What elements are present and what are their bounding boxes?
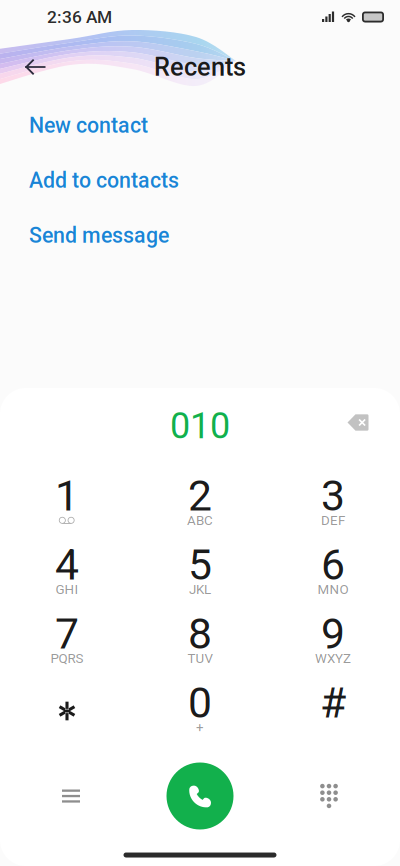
button[interactable]: 7 bbox=[0, 613, 133, 682]
staticText: DEF bbox=[321, 513, 345, 528]
button[interactable]: 2 bbox=[133, 475, 266, 544]
staticText: New contact bbox=[29, 113, 148, 138]
staticText: PQRS bbox=[50, 651, 83, 666]
staticText: Add to contacts bbox=[29, 168, 179, 193]
staticText: 9 bbox=[321, 609, 345, 659]
staticText: 0 bbox=[188, 678, 212, 728]
button[interactable]: Keypad bbox=[300, 767, 358, 825]
button[interactable] bbox=[0, 682, 133, 751]
button[interactable]: 1 bbox=[0, 475, 133, 544]
staticText: Send message bbox=[29, 223, 169, 248]
staticText: WXYZ bbox=[315, 651, 351, 666]
staticText: + bbox=[196, 720, 204, 735]
button[interactable]: # bbox=[266, 682, 399, 751]
staticText: 5 bbox=[188, 540, 212, 590]
staticText: MNO bbox=[317, 582, 348, 597]
staticText: 2 bbox=[188, 471, 212, 521]
button[interactable]: Back bbox=[12, 44, 58, 90]
staticText: ABC bbox=[187, 513, 213, 528]
button[interactable]: 9 bbox=[266, 613, 399, 682]
button[interactable]: 6 bbox=[266, 544, 399, 613]
staticText: JKL bbox=[189, 582, 211, 597]
staticText: # bbox=[320, 678, 346, 728]
button[interactable]: Delete bbox=[333, 404, 383, 448]
staticText: 6 bbox=[321, 540, 345, 590]
staticText: 4 bbox=[55, 540, 79, 590]
button[interactable]: 4 bbox=[0, 544, 133, 613]
staticText: 010 bbox=[170, 405, 230, 447]
button[interactable]: New contact bbox=[0, 98, 400, 153]
button[interactable]: 8 bbox=[133, 613, 266, 682]
button[interactable]: Add to contacts bbox=[0, 153, 400, 208]
staticText: 1 bbox=[55, 471, 79, 521]
staticText: GHI bbox=[55, 582, 78, 597]
staticText: 2:36 AM bbox=[47, 7, 112, 27]
staticText: Recents bbox=[154, 52, 246, 82]
staticText: 7 bbox=[55, 609, 79, 659]
button[interactable]: Send message bbox=[0, 208, 400, 263]
button[interactable]: More options bbox=[42, 767, 100, 825]
staticText: 3 bbox=[321, 471, 345, 521]
button[interactable]: Call bbox=[166, 762, 233, 829]
button[interactable]: 5 bbox=[133, 544, 266, 613]
button[interactable]: 0 bbox=[133, 682, 266, 751]
staticText: 8 bbox=[188, 609, 212, 659]
button[interactable]: 3 bbox=[266, 475, 399, 544]
staticText: TUV bbox=[187, 651, 212, 666]
